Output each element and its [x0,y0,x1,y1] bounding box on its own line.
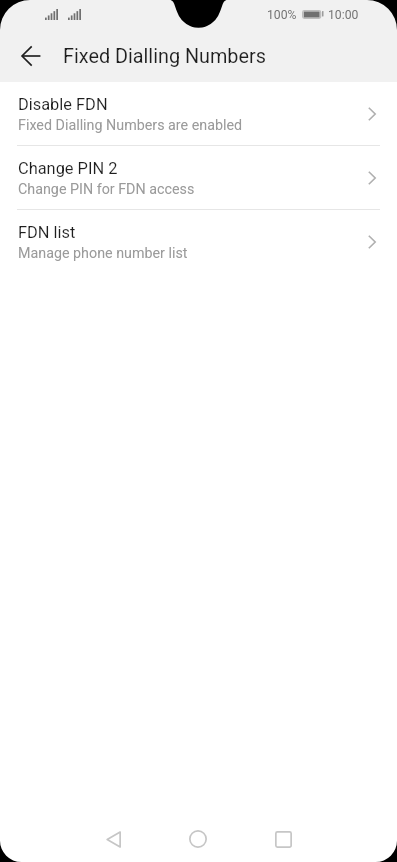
button[interactable]: FDN list [0,210,397,273]
button[interactable]: Home [170,815,226,862]
staticText: Fixed Dialling Numbers [63,45,266,68]
button[interactable]: Back [85,815,141,862]
button[interactable]: Change PIN 2 [0,146,397,209]
staticText: FDN list [18,223,76,242]
button[interactable]: Recents [255,815,311,862]
staticText: Fixed Dialling Numbers are enabled [18,117,243,134]
staticText: Change PIN 2 [18,159,118,178]
staticText: 10:00 [328,8,359,22]
staticText: Disable FDN [18,95,108,114]
button[interactable]: Back [7,32,55,80]
staticText: Change PIN for FDN access [18,181,195,198]
staticText: Manage phone number list [18,245,188,262]
staticText: 100% [267,8,297,22]
button[interactable]: Disable FDN [0,82,397,145]
